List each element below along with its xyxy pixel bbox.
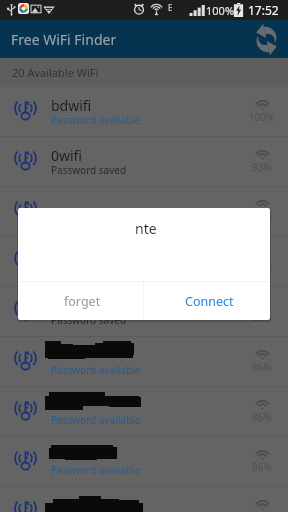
button[interactable]: Refresh bbox=[243, 20, 281, 58]
staticText: 100% bbox=[206, 3, 235, 18]
button[interactable]: Password available bbox=[0, 387, 288, 436]
staticText: 0wifi bbox=[51, 146, 83, 163]
button[interactable]: Password available bbox=[0, 337, 288, 386]
staticText: Connect bbox=[185, 293, 234, 310]
staticText: Password available bbox=[51, 113, 141, 127]
staticText: Password available bbox=[51, 463, 141, 477]
staticText: Password saved bbox=[51, 313, 127, 327]
staticText: Password available bbox=[51, 413, 141, 427]
staticText: 86% bbox=[252, 410, 272, 424]
button[interactable]: forget bbox=[18, 282, 143, 320]
staticText: 86% bbox=[252, 460, 272, 474]
staticText: bdwifi bbox=[51, 96, 92, 113]
staticText: forget bbox=[64, 293, 101, 310]
staticText: 93% bbox=[252, 160, 272, 174]
button[interactable]: Password saved bbox=[0, 287, 288, 336]
staticText: E bbox=[168, 2, 173, 13]
button[interactable]: Password available bbox=[0, 437, 288, 486]
staticText: 20 Available WiFi bbox=[12, 65, 99, 80]
button[interactable]: 90% bbox=[0, 187, 288, 236]
staticText: 100% bbox=[249, 110, 275, 124]
staticText: 90% bbox=[252, 210, 272, 224]
staticText: Password saved bbox=[51, 163, 127, 177]
staticText: 17:52 bbox=[248, 2, 279, 18]
button[interactable]: Password available bbox=[0, 487, 288, 512]
button[interactable]: bdwifi bbox=[0, 87, 288, 136]
button[interactable]: Connect bbox=[144, 282, 270, 320]
staticText: 86% bbox=[252, 360, 272, 374]
button[interactable]: 88% bbox=[0, 237, 288, 286]
button[interactable]: 0wifi bbox=[0, 137, 288, 186]
staticText: Password available bbox=[51, 363, 141, 377]
staticText: 86% bbox=[252, 310, 272, 324]
staticText: Free WiFi Finder bbox=[11, 30, 117, 49]
staticText: nte bbox=[135, 219, 157, 238]
staticText: 88% bbox=[252, 260, 272, 274]
